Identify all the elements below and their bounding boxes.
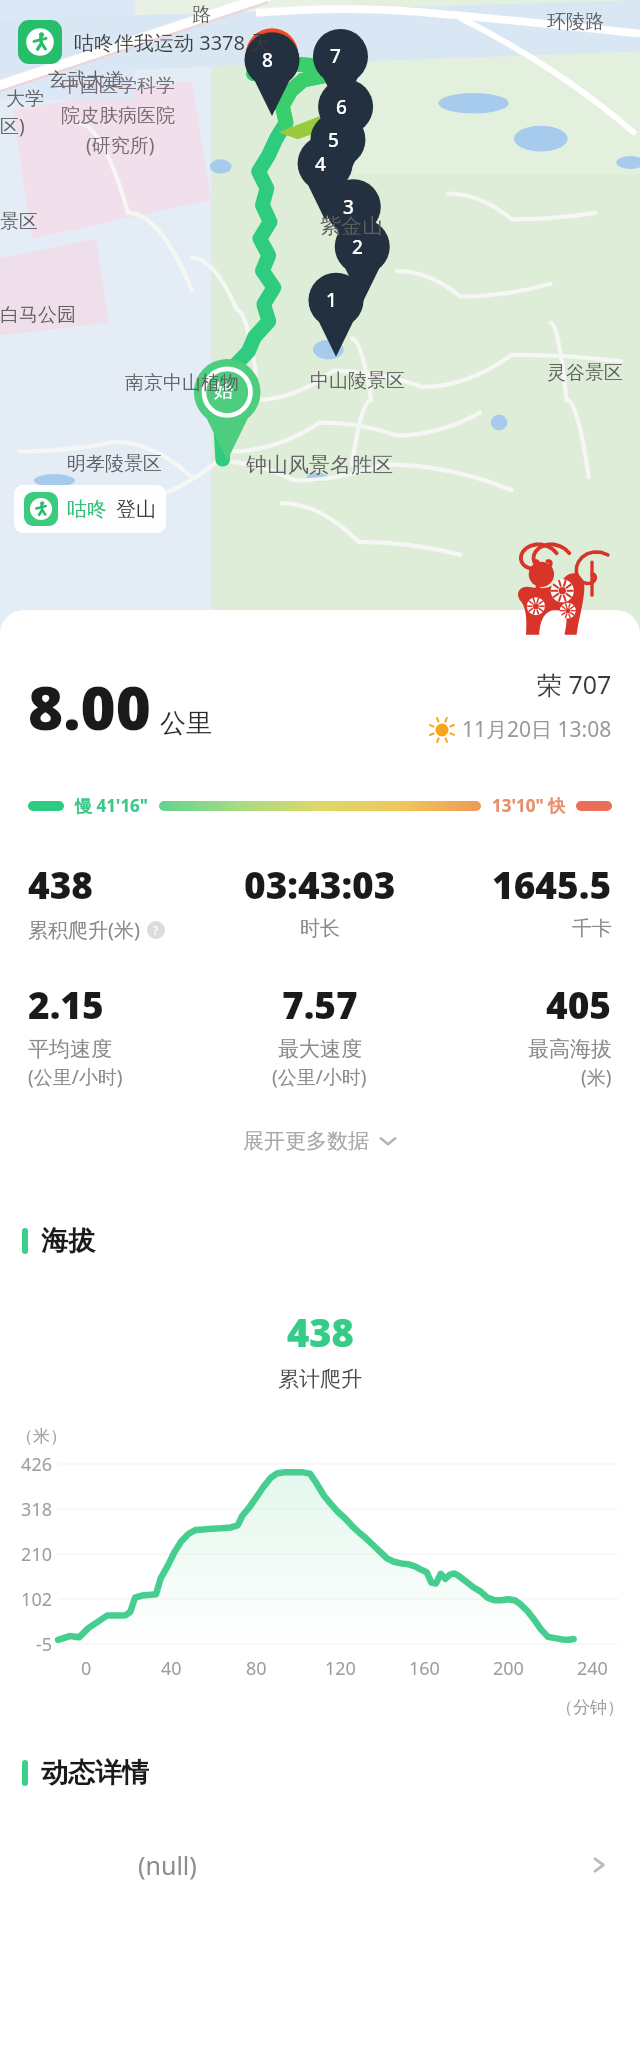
staticText: 大学 [6,87,44,111]
staticText: 灵谷景区 [547,361,623,385]
staticText: 40 [161,1656,182,1681]
staticText: 80 [246,1656,267,1681]
staticText: 2.15 [28,979,104,1029]
staticText: 438 [287,1306,354,1358]
staticText: ? [153,922,159,938]
staticText: 慢 41'16" [75,794,148,817]
staticText: 钟山风景名胜区 [246,452,393,478]
staticText: 318 [2,1497,52,1522]
staticText: 海拔 [41,1224,95,1258]
staticText: 明孝陵景区 [67,452,162,476]
staticText: 平均速度 [28,1036,112,1062]
staticText: 累积爬升(米) [28,916,140,943]
staticText: 始 [214,379,233,403]
staticText: 千卡 [572,916,612,941]
staticText: 8.00 [28,666,151,748]
staticText: 405 [546,979,612,1029]
staticText: (null) [138,1848,197,1882]
staticText: (公里/小时) [28,1064,123,1090]
staticText: 紫金山 [320,213,383,239]
button[interactable]: 咕咚伴我运动 3378 天 [18,20,271,64]
staticText: 院皮肤病医院 [61,104,175,128]
staticText: 13'10" 快 [492,794,565,817]
staticText: 公里 [160,707,212,740]
staticText: 咕咚伴我运动 3378 天 [74,29,271,56]
staticText: （分钟） [556,1697,624,1718]
other: Open dynamic details [588,1854,610,1876]
staticText: 6 [336,94,347,120]
staticText: 景区 [0,210,38,234]
staticText: 200 [493,1656,524,1681]
staticText: 1 [326,287,337,313]
staticText: 7.57 [282,979,358,1029]
button[interactable]: (null) [0,1834,640,1896]
staticText: (研究所) [86,132,155,158]
staticText: 中国医学科学 [61,74,175,98]
staticText: 展开更多数据 [243,1128,369,1154]
staticText: 426 [2,1452,52,1477]
staticText: 8 [262,47,273,73]
button[interactable]: 展开更多数据 [0,1120,640,1162]
staticText: 7 [330,43,341,69]
staticText: 4 [315,151,326,177]
staticText: 咕咚 [67,497,107,522]
staticText: 最高海拔 [528,1036,612,1062]
staticText: 2 [352,234,363,260]
staticText: 动态详情 [41,1756,149,1790]
staticText: 438 [28,859,94,909]
staticText: 11月20日 13:08 [462,715,612,744]
staticText: 240 [577,1656,608,1681]
staticText: 路 [192,3,211,27]
staticText: 160 [409,1656,440,1681]
staticText: （米） [16,1426,67,1447]
staticText: 120 [325,1656,356,1681]
staticText: 环陵路 [547,10,604,34]
staticText: 最大速度 [278,1036,362,1062]
button[interactable]: 咕咚 [14,485,166,533]
staticText: 玄武大道 [48,68,124,92]
staticText: (米) [581,1064,612,1090]
staticText: 中山陵景区 [310,369,405,393]
staticText: (公里/小时) [272,1064,367,1090]
staticText: -5 [2,1632,52,1657]
staticText: 白马公园 [0,303,76,327]
staticText: 5 [328,127,339,153]
staticText: 累计爬升 [278,1366,362,1392]
staticText: 南京中山植物 [125,371,239,395]
staticText: 102 [2,1587,52,1612]
staticText: 0 [81,1656,92,1681]
staticText: 03:43:03 [244,859,396,909]
staticText: 区) [0,113,25,139]
staticText: 登山 [116,497,156,522]
staticText: 时长 [300,916,340,941]
staticText: 3 [343,194,354,220]
staticText: 荣 707 [537,667,612,701]
staticText: 1645.5 [492,859,612,909]
staticText: 210 [2,1542,52,1567]
